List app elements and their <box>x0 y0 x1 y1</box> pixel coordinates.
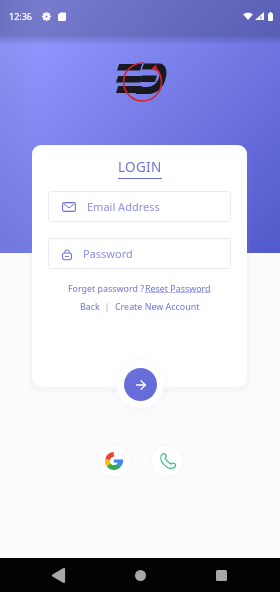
button[interactable]: Sign in <box>124 368 157 401</box>
staticText: | <box>100 300 115 312</box>
button[interactable]: Back <box>80 300 100 312</box>
button[interactable]: Back <box>41 558 75 592</box>
button[interactable]: Sign in with phone <box>149 443 185 479</box>
staticText: 12:36 <box>9 10 33 22</box>
button[interactable]: Create New Account <box>115 300 200 312</box>
staticText: Forget password ? <box>68 282 145 294</box>
staticText: Email Address <box>87 199 160 214</box>
button[interactable]: Sign in with Google <box>96 443 132 479</box>
staticText: LOGIN <box>118 158 162 176</box>
button[interactable]: Recent apps <box>204 558 238 592</box>
button[interactable]: Reset Password <box>145 282 211 294</box>
staticText: Password <box>83 246 133 261</box>
button[interactable]: Email Address <box>48 191 231 222</box>
button[interactable]: Password <box>48 238 231 269</box>
button[interactable]: Home <box>123 558 157 592</box>
